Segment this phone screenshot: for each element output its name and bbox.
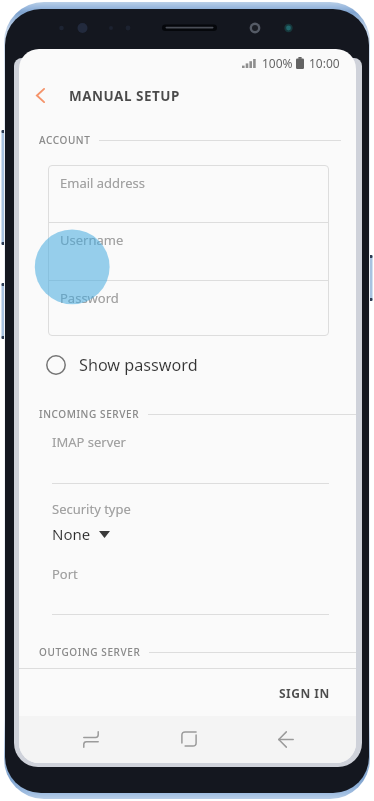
button[interactable]: Email address <box>48 165 329 222</box>
staticText: 100% <box>262 55 293 71</box>
button[interactable]: Port <box>52 560 329 588</box>
button[interactable]: Back <box>260 716 312 762</box>
staticText: Show password <box>79 354 198 376</box>
staticText: Username <box>60 231 124 249</box>
button[interactable]: Password <box>48 280 329 337</box>
button[interactable]: None <box>52 520 122 548</box>
staticText: IMAP server <box>52 433 126 451</box>
staticText: Security type <box>52 500 131 518</box>
staticText: MANUAL SETUP <box>69 87 180 105</box>
button[interactable]: Username <box>48 222 329 279</box>
button[interactable]: Back <box>22 77 59 113</box>
staticText: Port <box>52 565 78 583</box>
button[interactable]: Home <box>163 716 215 762</box>
staticText: INCOMING SERVER <box>39 407 140 421</box>
staticText: 10:00 <box>309 55 340 71</box>
button[interactable]: Security type <box>52 495 329 523</box>
staticText: Email address <box>60 174 145 192</box>
button[interactable]: SIGN IN <box>261 674 356 712</box>
button[interactable]: Recent apps <box>65 716 117 762</box>
staticText: ACCOUNT <box>39 133 91 147</box>
button[interactable]: IMAP server <box>52 428 329 456</box>
staticText: SIGN IN <box>279 685 330 701</box>
button[interactable]: Show password <box>40 349 240 381</box>
staticText: Password <box>60 289 119 307</box>
staticText: None <box>52 524 91 544</box>
staticText: OUTGOING SERVER <box>39 645 141 659</box>
